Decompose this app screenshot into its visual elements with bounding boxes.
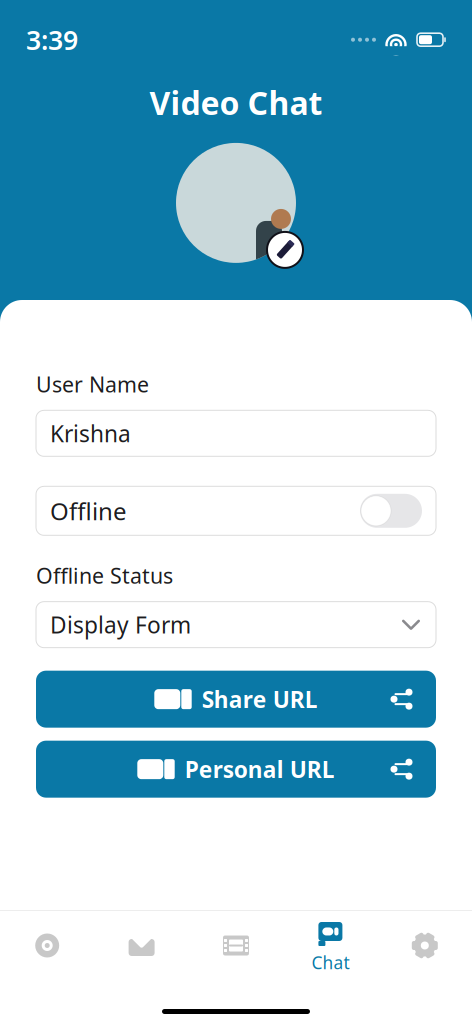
staticText: Video Chat [149, 81, 322, 124]
staticText: Share URL [202, 684, 318, 714]
button[interactable]: Edit profile photo [267, 232, 303, 268]
button[interactable]: Recordings [0, 921, 94, 973]
button[interactable]: Personal URL [36, 741, 436, 798]
button[interactable]: Chat [283, 921, 378, 973]
button[interactable]: Offline [36, 486, 436, 535]
staticText: 3:39 [26, 22, 78, 57]
staticText: Personal URL [185, 754, 335, 784]
staticText: Offline Status [36, 561, 173, 590]
staticText: Krishna [50, 418, 131, 448]
staticText: Offline [50, 495, 127, 527]
button[interactable]: Videos [189, 921, 283, 973]
button[interactable]: Mail [94, 921, 189, 973]
staticText: Chat [311, 951, 349, 974]
button[interactable]: Share URL [36, 671, 436, 728]
button[interactable]: Display Form [36, 602, 436, 648]
staticText: Display Form [50, 610, 191, 640]
staticText: User Name [36, 370, 149, 398]
button[interactable]: Settings [378, 921, 472, 973]
